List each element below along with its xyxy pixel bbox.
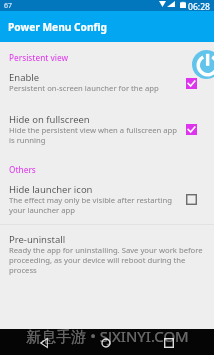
staticText: Power Menu Config: [8, 20, 108, 34]
staticText: Hide on fullscreen: [9, 113, 90, 126]
button[interactable]: Pre-uninstall: [0, 233, 214, 276]
staticText: Hide launcher icon: [9, 183, 93, 196]
staticText: 67: [4, 1, 13, 11]
staticText: Others: [9, 164, 36, 175]
staticText: Pre-uninstall: [9, 233, 66, 246]
button[interactable]: Back: [35, 334, 52, 351]
staticText: Persistent on-screen launcher for the ap…: [9, 83, 159, 93]
button[interactable]: Toggle: [186, 78, 197, 89]
button[interactable]: Hide launcher icon: [0, 183, 214, 216]
button[interactable]: Toggle: [186, 124, 197, 135]
staticText: Enable: [9, 71, 40, 84]
button[interactable]: Toggle: [186, 194, 197, 205]
button[interactable]: Enable: [0, 71, 214, 94]
staticText: The effect may only be visible after res…: [9, 195, 172, 215]
staticText: Hide the persistent view when a fullscre…: [9, 125, 178, 145]
staticText: Persistent view: [9, 52, 69, 63]
staticText: 06:28: [188, 1, 210, 12]
button[interactable]: Hide on fullscreen: [0, 113, 214, 146]
button[interactable]: Home: [97, 334, 114, 351]
staticText: Ready the app for uninstalling. Save you…: [9, 245, 203, 275]
button[interactable]: Recents: [160, 334, 177, 351]
staticText: 新息手游 • SJXINYI.COM: [26, 326, 189, 346]
